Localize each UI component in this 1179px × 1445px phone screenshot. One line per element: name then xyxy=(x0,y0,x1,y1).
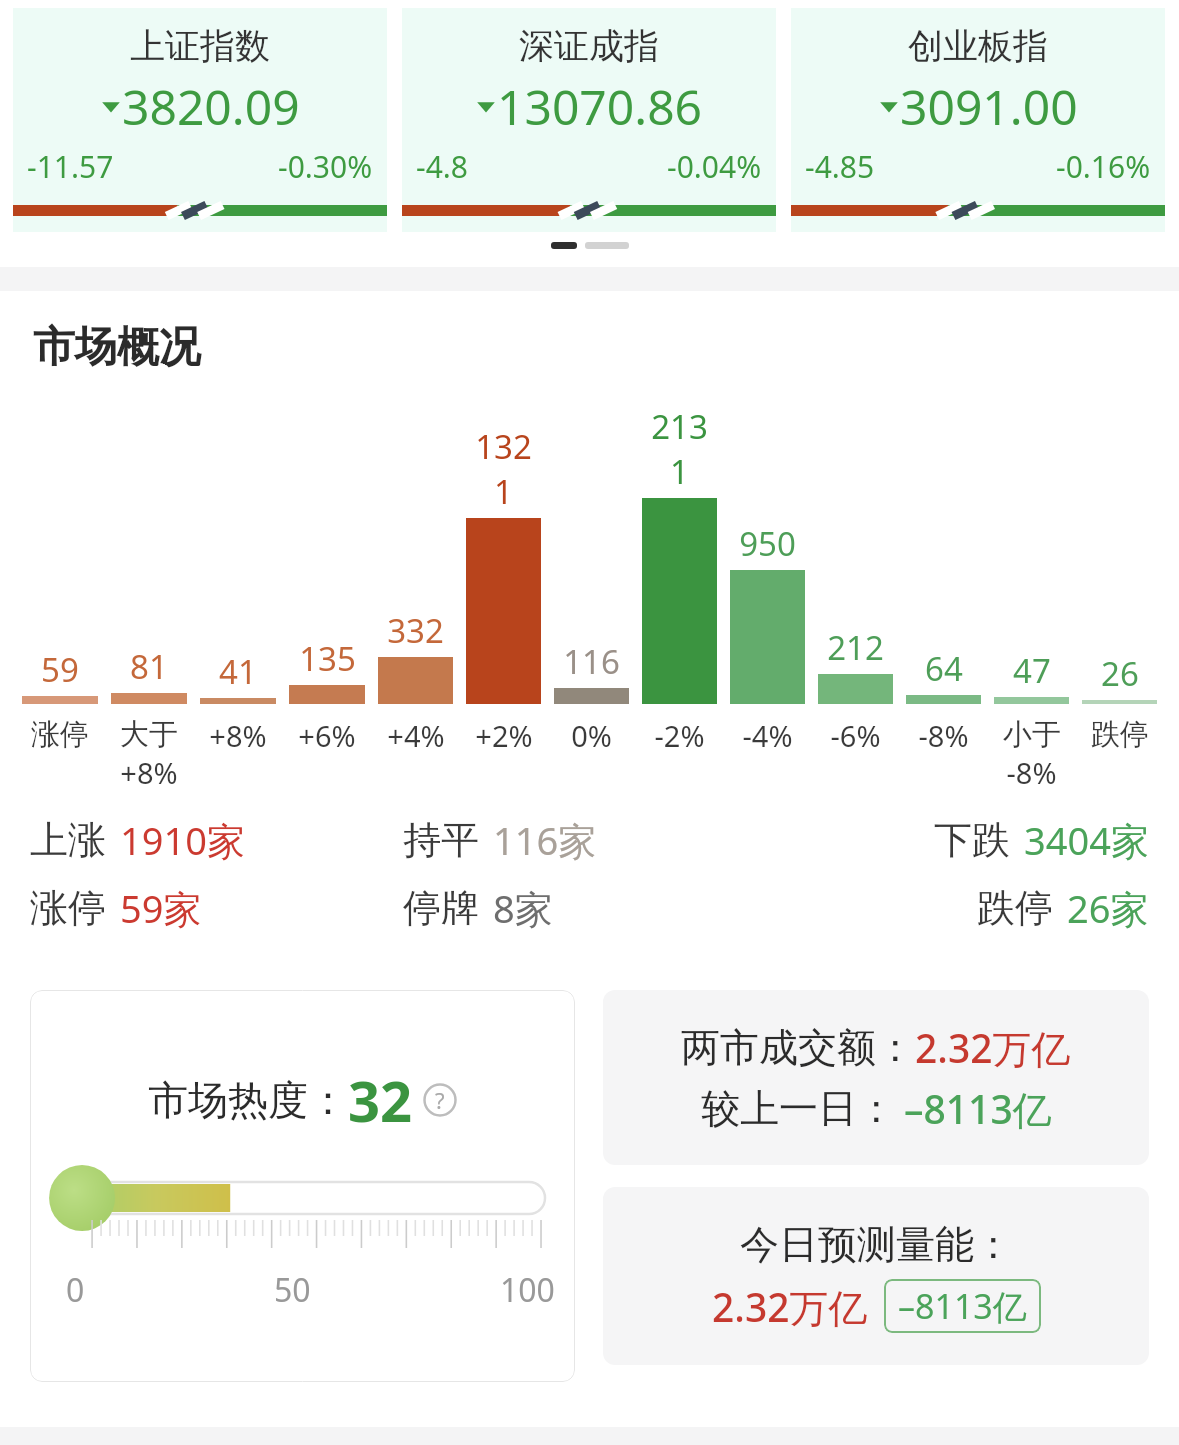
staticText: 今日预测量能： xyxy=(740,1220,1013,1269)
staticText: 跌停 xyxy=(977,884,1053,932)
staticText: +2% xyxy=(475,716,533,755)
staticText: 持平 xyxy=(403,816,479,864)
staticText: 135 xyxy=(299,636,356,681)
staticText: 较上一日： xyxy=(701,1084,896,1133)
staticText: -8% xyxy=(918,716,969,755)
staticText: –8113亿 xyxy=(904,1082,1052,1135)
staticText: 32 xyxy=(348,1062,413,1138)
button[interactable]: 64 xyxy=(906,404,981,755)
staticText: 下跌 xyxy=(934,816,1010,864)
button[interactable]: 59 xyxy=(22,404,98,753)
staticText: -4% xyxy=(742,716,793,755)
staticText: 大于 xyxy=(120,716,178,753)
staticText: 3404家 xyxy=(1024,814,1149,866)
staticText: 59 xyxy=(41,647,79,692)
staticText: -11.57 xyxy=(27,146,114,187)
button[interactable]: 今日预测量能： xyxy=(603,1187,1149,1365)
staticText: -4.85 xyxy=(805,146,875,187)
staticText: 8家 xyxy=(493,882,553,934)
button[interactable]: 47 xyxy=(994,404,1069,792)
staticText: 3820.09 xyxy=(122,74,300,139)
staticText: 市场概况 xyxy=(33,321,201,374)
staticText: 41 xyxy=(219,649,257,694)
staticText: -0.30% xyxy=(278,146,373,187)
staticText: 212 xyxy=(827,625,884,670)
button[interactable]: 1321 xyxy=(466,404,541,755)
staticText: 3091.00 xyxy=(900,74,1078,139)
button[interactable]: 两市成交额： xyxy=(603,990,1149,1165)
staticText: -4.8 xyxy=(416,146,469,187)
staticText: 小于 xyxy=(1003,716,1061,753)
button[interactable]: 212 xyxy=(818,404,893,755)
staticText: 26家 xyxy=(1067,882,1149,934)
button[interactable]: 332 xyxy=(378,404,453,755)
staticText: ? xyxy=(435,1085,445,1115)
button[interactable]: 说明 xyxy=(423,1083,457,1117)
staticText: +8% xyxy=(120,753,178,792)
staticText: +4% xyxy=(387,716,445,755)
button[interactable]: 2131 xyxy=(642,404,717,755)
staticText: 0 xyxy=(66,1268,85,1312)
button[interactable]: 116 xyxy=(554,404,629,755)
staticText: 116家 xyxy=(493,814,597,866)
button[interactable]: 创业板指 xyxy=(791,8,1165,232)
staticText: -0.16% xyxy=(1056,146,1151,187)
staticText: 116 xyxy=(563,639,620,684)
staticText: 2.32万亿 xyxy=(915,1021,1071,1074)
staticText: 50 xyxy=(274,1268,311,1312)
button[interactable]: 上证指数 xyxy=(13,8,387,232)
staticText: -6% xyxy=(830,716,881,755)
staticText: 0% xyxy=(571,716,612,755)
staticText: 47 xyxy=(1013,648,1051,693)
staticText: +6% xyxy=(298,716,356,755)
staticText: 上证指数 xyxy=(130,24,270,68)
staticText: 跌停 xyxy=(1091,716,1149,753)
staticText: 59家 xyxy=(120,882,202,934)
staticText: 停牌 xyxy=(403,884,479,932)
staticText: -2% xyxy=(654,716,705,755)
staticText: 13070.86 xyxy=(497,74,703,139)
staticText: 2.32万亿 xyxy=(712,1280,868,1333)
staticText: 64 xyxy=(925,646,963,691)
staticText: 26 xyxy=(1101,651,1139,696)
button[interactable]: 81 xyxy=(111,404,187,792)
staticText: 332 xyxy=(387,608,444,653)
staticText: 1321 xyxy=(466,424,541,514)
staticText: 100 xyxy=(500,1268,555,1312)
button[interactable]: 深证成指 xyxy=(402,8,776,232)
staticText: 950 xyxy=(739,521,796,566)
staticText: 1910家 xyxy=(120,814,245,866)
staticText: 涨停 xyxy=(30,884,106,932)
staticText: 两市成交额： xyxy=(681,1023,915,1072)
button[interactable]: 135 xyxy=(289,404,365,755)
staticText: 深证成指 xyxy=(519,24,659,68)
staticText: +8% xyxy=(209,716,267,755)
staticText: 市场热度： xyxy=(148,1075,348,1125)
staticText: 上涨 xyxy=(30,816,106,864)
button[interactable]: 26 xyxy=(1082,404,1157,753)
button[interactable]: 41 xyxy=(200,404,276,755)
staticText: 81 xyxy=(130,644,168,689)
staticText: -0.04% xyxy=(667,146,762,187)
staticText: 涨停 xyxy=(31,716,89,753)
staticText: 创业板指 xyxy=(908,24,1048,68)
button[interactable]: 950 xyxy=(730,404,805,755)
staticText: –8113亿 xyxy=(898,1283,1027,1329)
button[interactable]: 市场热度： xyxy=(30,990,575,1382)
staticText: -8% xyxy=(1006,753,1057,792)
staticText: 2131 xyxy=(642,404,717,494)
